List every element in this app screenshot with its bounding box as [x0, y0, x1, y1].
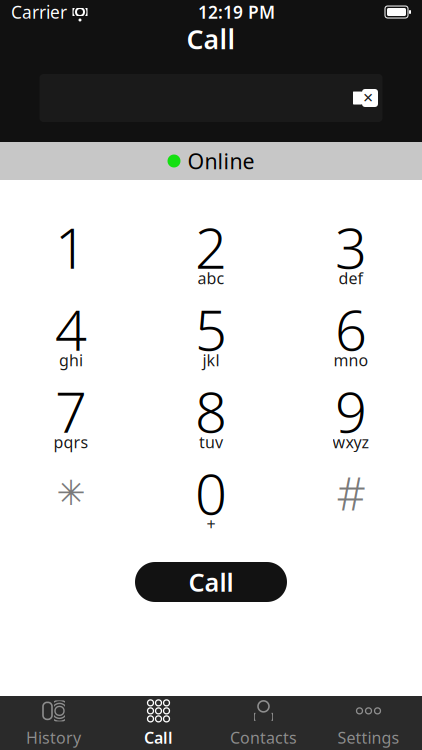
- staticText: 0: [195, 456, 227, 530]
- staticText: History: [26, 727, 81, 748]
- button[interactable]: 2: [141, 214, 281, 296]
- button[interactable]: Call: [135, 562, 287, 602]
- button[interactable]: 5: [141, 296, 281, 378]
- staticText: 1: [55, 210, 87, 284]
- staticText: wxyz: [332, 431, 369, 453]
- staticText: Carrier: [11, 0, 67, 23]
- staticText: jkl: [202, 349, 219, 371]
- staticText: abc: [197, 267, 224, 289]
- staticText: Contacts: [230, 727, 297, 748]
- staticText: 5: [195, 292, 227, 366]
- staticText: Call: [186, 21, 235, 57]
- staticText: tuv: [199, 431, 223, 453]
- button[interactable]: 6: [281, 296, 421, 378]
- staticText: 6: [335, 292, 367, 366]
- button[interactable]: Settings: [316, 696, 421, 750]
- staticText: 9: [335, 374, 367, 448]
- staticText: 8: [195, 374, 227, 448]
- staticText: ✕: [362, 90, 373, 105]
- button[interactable]: 1: [1, 214, 141, 296]
- button[interactable]: Call: [106, 696, 211, 750]
- button[interactable]: Delete: [348, 81, 382, 115]
- staticText: def: [338, 267, 363, 289]
- staticText: 2: [195, 210, 227, 284]
- staticText: +: [206, 513, 215, 535]
- button[interactable]: ✳: [1, 460, 141, 542]
- staticText: Settings: [337, 727, 399, 748]
- button[interactable]: 7: [1, 378, 141, 460]
- button[interactable]: History: [1, 696, 106, 750]
- button[interactable]: 4: [1, 296, 141, 378]
- button[interactable]: 3: [281, 214, 421, 296]
- button[interactable]: 0: [141, 460, 281, 542]
- staticText: mno: [333, 349, 368, 371]
- staticText: 3: [335, 210, 367, 284]
- staticText: Online: [187, 147, 254, 175]
- staticText: #: [336, 463, 365, 523]
- staticText: 12:19 PM: [198, 0, 275, 23]
- staticText: Call: [144, 727, 173, 748]
- button[interactable]: Contacts: [211, 696, 316, 750]
- button[interactable]: 8: [141, 378, 281, 460]
- staticText: 7: [55, 374, 87, 448]
- staticText: pqrs: [53, 431, 88, 453]
- staticText: ✳: [56, 473, 85, 513]
- staticText: Call: [188, 565, 233, 599]
- staticText: ghi: [59, 349, 83, 371]
- staticText: 4: [55, 292, 87, 366]
- button[interactable]: #: [281, 460, 421, 542]
- button[interactable]: 9: [281, 378, 421, 460]
